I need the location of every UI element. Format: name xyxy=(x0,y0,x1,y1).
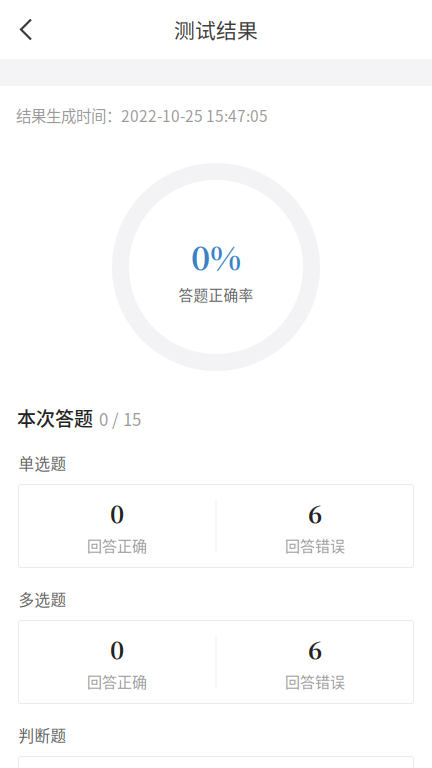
staticText: 单选题 xyxy=(18,452,66,474)
staticText: 本次答题 xyxy=(17,404,93,431)
staticText: 测试结果 xyxy=(174,14,258,44)
staticText: 6 xyxy=(308,632,322,666)
staticText: 0 xyxy=(110,632,124,666)
staticText: 6 xyxy=(308,496,322,530)
staticText: 答题正确率 xyxy=(178,284,253,305)
staticText: 多选题 xyxy=(18,588,66,610)
staticText: 回答错误 xyxy=(285,670,345,692)
staticText: 判断题 xyxy=(18,724,66,746)
staticText: 回答错误 xyxy=(285,534,345,556)
staticText: 结果生成时间：2022-10-25 15:47:05 xyxy=(16,104,268,126)
staticText: 回答正确 xyxy=(87,670,147,692)
staticText: 回答正确 xyxy=(87,534,147,556)
staticText: 0% xyxy=(191,233,241,280)
staticText: 0 / 15 xyxy=(99,406,141,431)
button[interactable]: Back xyxy=(0,0,52,58)
staticText: 0 xyxy=(110,496,124,530)
